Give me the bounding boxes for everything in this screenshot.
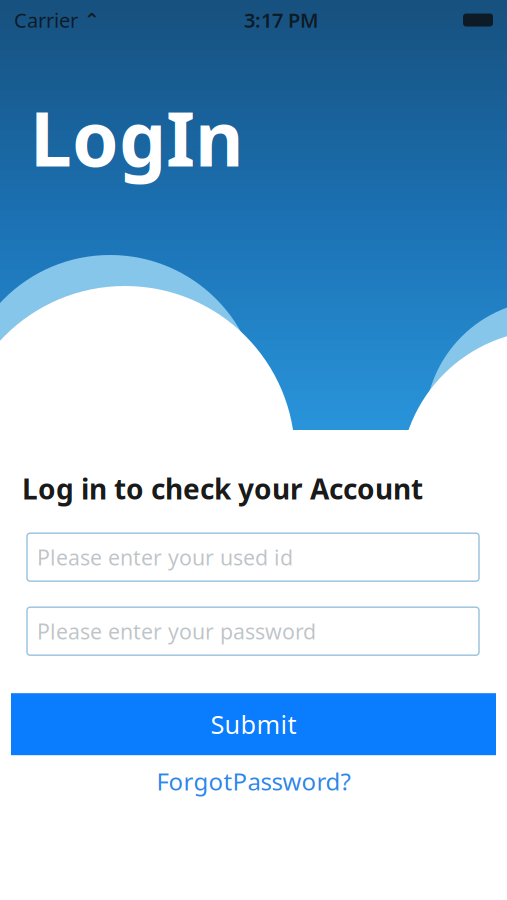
staticText: Log in to check your Account <box>22 470 423 507</box>
staticText: Carrier <box>14 7 78 33</box>
staticText: LogIn <box>30 88 244 187</box>
button[interactable]: Please enter your password <box>27 607 479 655</box>
button[interactable]: Submit <box>11 693 496 755</box>
staticText: 3:17 PM <box>244 7 319 33</box>
staticText: Please enter your used id <box>37 543 293 571</box>
staticText: Please enter your password <box>37 617 316 645</box>
staticText: ForgotPassword? <box>156 765 350 797</box>
staticText: ⌃ <box>78 9 100 31</box>
staticText: Submit <box>210 707 296 741</box>
button[interactable]: Please enter your used id <box>27 533 479 581</box>
button[interactable]: ForgotPassword? <box>11 761 496 801</box>
